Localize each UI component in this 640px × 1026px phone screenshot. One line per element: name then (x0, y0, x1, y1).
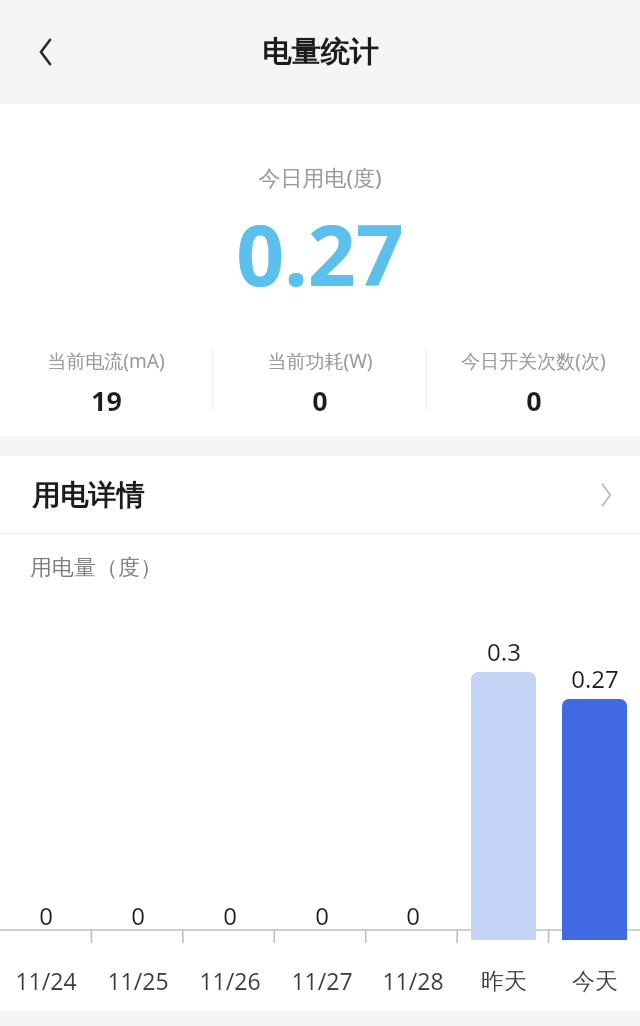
button[interactable]: 0 (0, 534, 92, 1010)
staticText: 用电详情 (32, 478, 144, 513)
staticText: 用电量（度） (30, 554, 162, 582)
button[interactable]: 0 (92, 534, 184, 1010)
staticText: 0 (131, 899, 145, 932)
staticText: 11/27 (291, 965, 353, 996)
staticText: 0 (526, 382, 542, 419)
staticText: 11/24 (15, 965, 77, 996)
button[interactable]: 0.3 (458, 534, 549, 1010)
button[interactable]: Back (18, 24, 74, 80)
staticText: 0.27 (0, 196, 640, 310)
staticText: 当前功耗(W) (267, 348, 373, 374)
staticText: 11/25 (107, 965, 169, 996)
staticText: 今天 (572, 967, 618, 996)
button[interactable]: 今日开关次数(次) (427, 348, 640, 419)
staticText: 0.27 (571, 662, 619, 695)
button[interactable]: 0 (367, 534, 458, 1010)
staticText: 0 (406, 899, 420, 932)
button[interactable]: 0.27 (549, 534, 640, 1010)
staticText: 昨天 (481, 967, 527, 996)
staticText: 0.3 (487, 635, 521, 668)
staticText: 当前电流(mA) (47, 348, 165, 374)
staticText: 0 (315, 899, 329, 932)
staticText: 0 (39, 899, 53, 932)
staticText: 0 (312, 382, 328, 419)
button[interactable]: 当前功耗(W) (213, 348, 426, 419)
button[interactable]: 当前电流(mA) (0, 348, 212, 419)
staticText: 电量统计 (262, 34, 378, 71)
button[interactable]: 用电详情 (0, 456, 640, 534)
button[interactable]: 0 (276, 534, 367, 1010)
staticText: 今日开关次数(次) (461, 348, 606, 374)
staticText: 19 (91, 382, 122, 419)
staticText: 11/26 (199, 965, 261, 996)
staticText: 今日用电(度) (0, 162, 640, 192)
staticText: 0 (223, 899, 237, 932)
button[interactable]: 0 (184, 534, 276, 1010)
staticText: 11/28 (382, 965, 444, 996)
